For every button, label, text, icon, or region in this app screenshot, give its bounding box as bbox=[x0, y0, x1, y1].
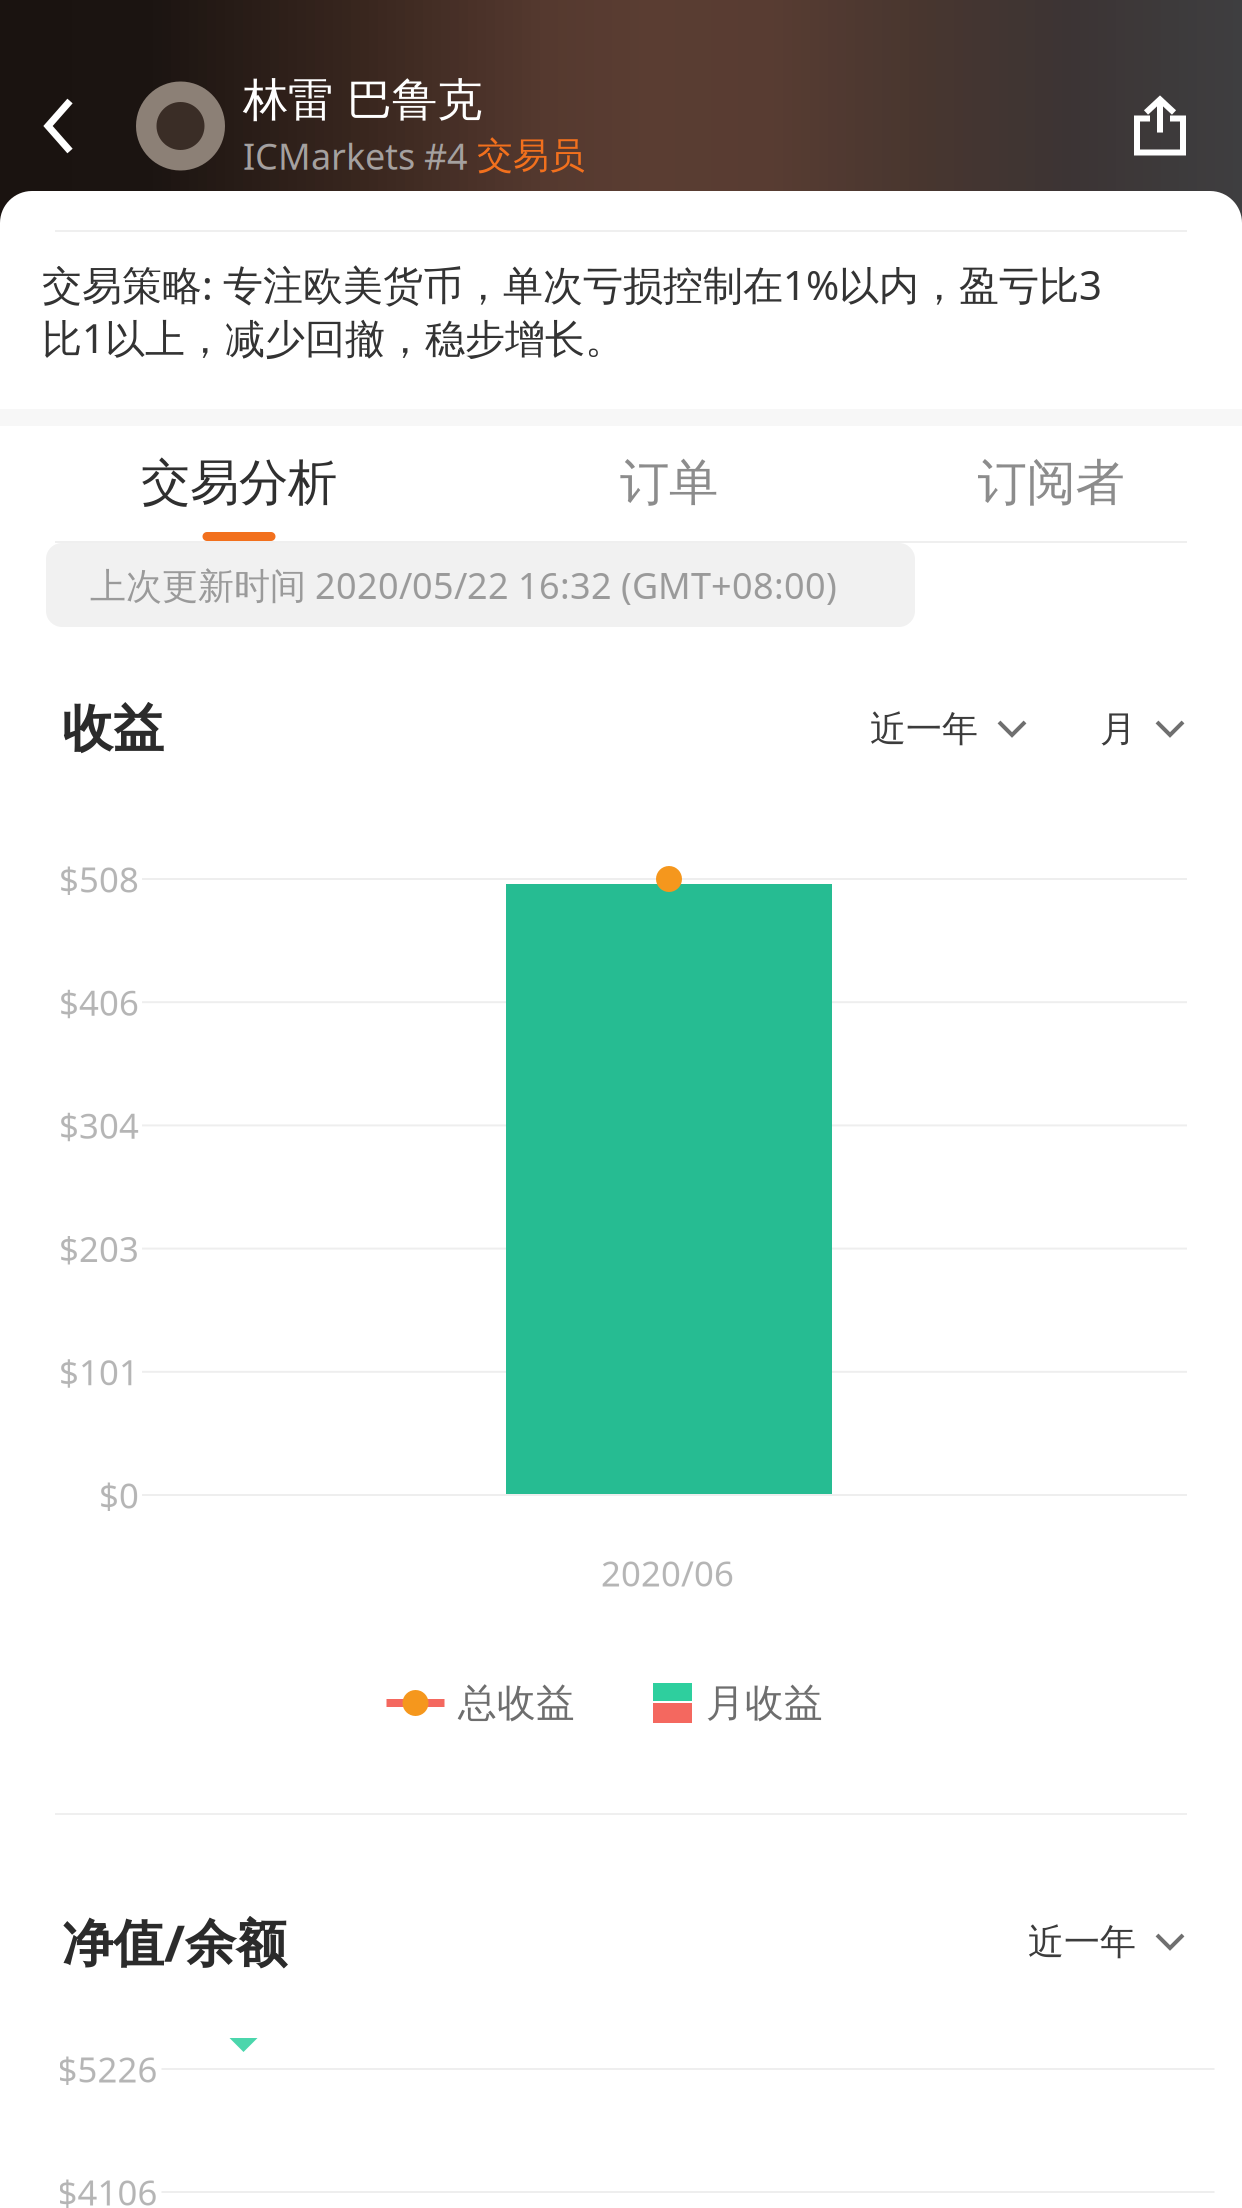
staticText: 交易员 bbox=[477, 134, 585, 178]
staticText: $0 bbox=[99, 1472, 139, 1518]
staticText: 净值/余额 bbox=[62, 1908, 287, 1976]
staticText: 近一年 bbox=[1028, 1920, 1136, 1964]
button[interactable]: 月 bbox=[1100, 699, 1186, 759]
staticText: $406 bbox=[59, 979, 139, 1025]
staticText: 月 bbox=[1100, 707, 1136, 751]
staticText: 上次更新时间 2020/05/22 16:32 (GMT+08:00) bbox=[90, 561, 837, 609]
button[interactable]: 订阅者 bbox=[860, 426, 1242, 541]
staticText: $203 bbox=[59, 1226, 139, 1272]
staticText: 交易策略: 专注欧美货币，单次亏损控制在1%以内，盈亏比3比1以上，减少回撤，稳… bbox=[42, 258, 1102, 364]
staticText: 收益 bbox=[62, 698, 164, 760]
staticText: $508 bbox=[59, 856, 139, 902]
button[interactable]: Back bbox=[0, 26, 118, 226]
button[interactable]: 订单 bbox=[478, 426, 860, 541]
staticText: 订单 bbox=[620, 452, 718, 513]
staticText: 2020/06 bbox=[601, 1550, 734, 1596]
staticText: $5226 bbox=[57, 2046, 157, 2092]
button[interactable]: Share bbox=[1078, 46, 1242, 206]
staticText: 月收益 bbox=[706, 1679, 823, 1727]
staticText: 总收益 bbox=[458, 1679, 575, 1727]
staticText: 交易分析 bbox=[141, 452, 337, 513]
button[interactable]: 近一年 bbox=[1028, 1912, 1186, 1972]
button[interactable]: 近一年 bbox=[870, 699, 1028, 759]
staticText: 订阅者 bbox=[977, 452, 1124, 513]
staticText: ICMarkets #4 bbox=[243, 132, 477, 180]
staticText: $101 bbox=[59, 1349, 139, 1395]
button[interactable]: 林雷 巴鲁克 bbox=[118, 46, 585, 206]
button[interactable]: 交易分析 bbox=[0, 426, 478, 541]
staticText: 林雷 巴鲁克 bbox=[243, 72, 482, 128]
staticText: 近一年 bbox=[870, 707, 978, 751]
staticText: $304 bbox=[59, 1102, 139, 1148]
staticText: $4106 bbox=[57, 2169, 157, 2208]
